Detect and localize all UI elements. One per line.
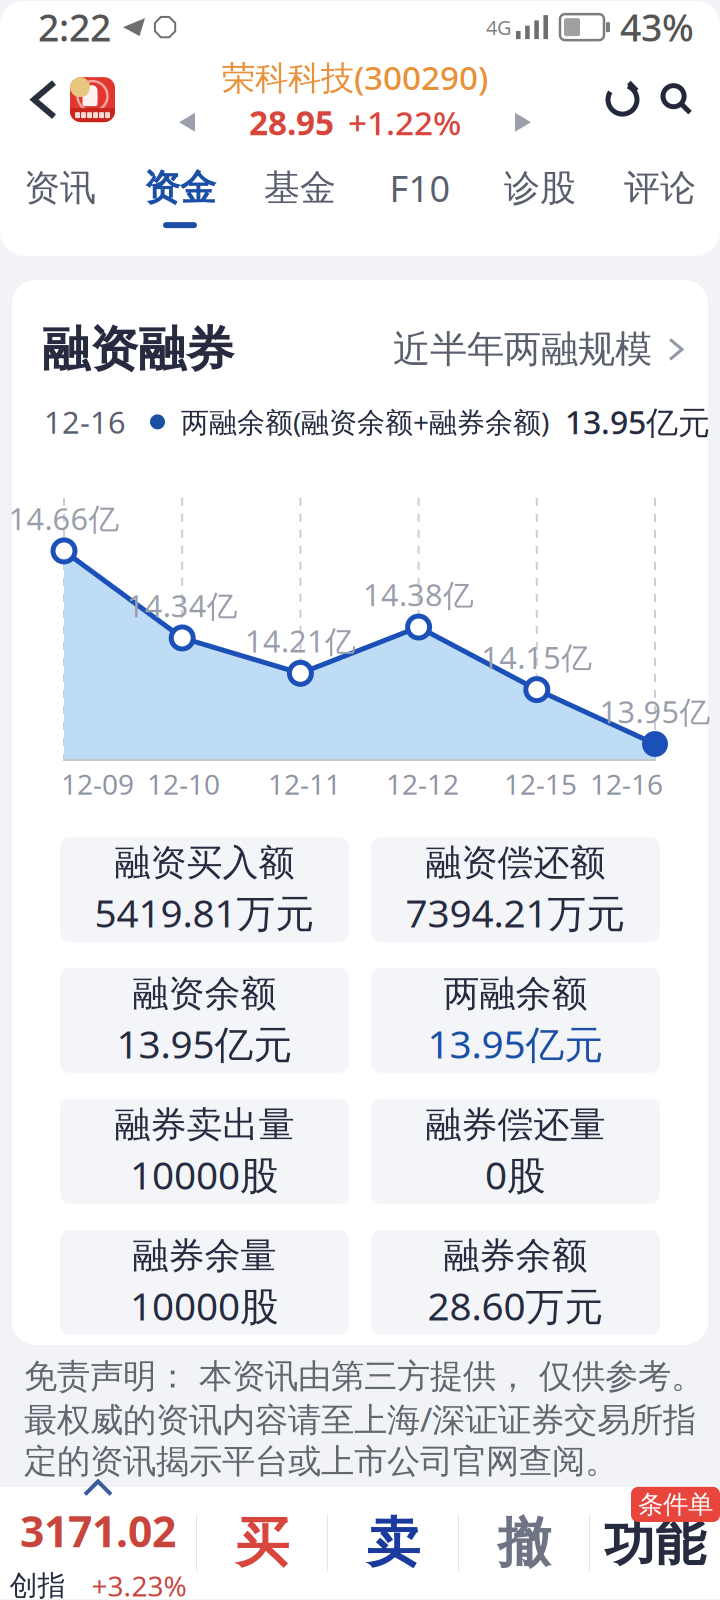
- staticText: 融券余额: [443, 1234, 587, 1278]
- staticText: 两融余额(融资余额+融券余额): [181, 403, 549, 440]
- staticText: 12-15: [504, 765, 577, 802]
- staticText: 14.38亿: [363, 574, 474, 615]
- staticText: 诊股: [504, 166, 576, 210]
- staticText: 4G: [486, 14, 512, 40]
- staticText: 近半年两融规模: [393, 326, 652, 372]
- staticText: 创指: [9, 1568, 65, 1600]
- staticText: 融券余量: [132, 1234, 276, 1278]
- staticText: 14.21亿: [245, 620, 356, 661]
- staticText: +1.22%: [348, 100, 461, 144]
- staticText: 12-12: [386, 765, 459, 802]
- staticText: 13.95亿元: [427, 1018, 603, 1069]
- button[interactable]: 评论: [600, 148, 720, 254]
- staticText: 2:22: [38, 2, 111, 52]
- staticText: 28.60万元: [427, 1280, 603, 1331]
- staticText: 融资偿还额: [425, 841, 605, 885]
- staticText: 5419.81万元: [94, 887, 314, 938]
- button[interactable]: 3171.02: [0, 1481, 196, 1600]
- staticText: 43%: [620, 2, 694, 52]
- button[interactable]: 近半年两融规模: [393, 326, 682, 372]
- button[interactable]: Refresh: [595, 59, 650, 140]
- staticText: 卖: [366, 1510, 419, 1576]
- button[interactable]: F10: [360, 146, 480, 256]
- staticText: 28.95: [249, 100, 334, 144]
- button[interactable]: 诊股: [480, 148, 600, 254]
- staticText: 免责声明： 本资讯由第三方提供， 仅供参考。最权威的资讯内容请至上海/深证证券交…: [24, 1356, 704, 1482]
- staticText: 融券卖出量: [114, 1103, 294, 1147]
- staticText: 13.95亿元: [565, 401, 710, 443]
- staticText: 12-10: [147, 765, 220, 802]
- staticText: 功能: [604, 1512, 706, 1574]
- staticText: 12-09: [61, 765, 134, 802]
- staticText: 融资余额: [132, 972, 276, 1016]
- staticText: 7394.21万元: [405, 887, 625, 938]
- staticText: 基金: [264, 166, 336, 210]
- button[interactable]: 卖: [328, 1487, 458, 1599]
- staticText: 买: [235, 1510, 288, 1576]
- button[interactable]: 撤: [459, 1487, 589, 1599]
- staticText: 14.66亿: [9, 498, 120, 539]
- staticText: 0股: [485, 1149, 546, 1200]
- staticText: 评论: [624, 166, 696, 210]
- staticText: 资讯: [24, 166, 96, 210]
- staticText: 荣科科技(300290): [222, 55, 488, 99]
- button[interactable]: 资金: [120, 148, 240, 254]
- staticText: 13.95亿: [599, 691, 710, 732]
- button[interactable]: Search: [650, 60, 704, 140]
- staticText: 条件单: [638, 1489, 713, 1520]
- staticText: 10000股: [130, 1280, 279, 1331]
- staticText: 两融余额: [443, 972, 587, 1016]
- staticText: 融券偿还量: [425, 1103, 605, 1147]
- staticText: F10: [389, 164, 450, 212]
- button[interactable]: 买: [197, 1487, 327, 1599]
- staticText: 14.15亿: [481, 637, 592, 677]
- staticText: 12-16: [44, 401, 126, 442]
- staticText: 融资融券: [42, 320, 234, 379]
- staticText: 12-16: [590, 765, 663, 802]
- staticText: +3.23%: [91, 1567, 186, 1600]
- staticText: 10000股: [130, 1149, 279, 1200]
- staticText: 12-11: [268, 765, 341, 802]
- staticText: 13.95亿元: [116, 1018, 292, 1069]
- staticText: 14.34亿: [127, 585, 238, 626]
- button[interactable]: 基金: [240, 148, 360, 254]
- staticText: 3171.02: [20, 1502, 176, 1559]
- button[interactable]: 资讯: [0, 148, 120, 254]
- button[interactable]: 功能: [590, 1487, 720, 1599]
- staticText: 撤: [497, 1510, 550, 1576]
- staticText: 融资买入额: [114, 841, 294, 885]
- button[interactable]: Back: [18, 57, 70, 143]
- staticText: 资金: [144, 166, 216, 210]
